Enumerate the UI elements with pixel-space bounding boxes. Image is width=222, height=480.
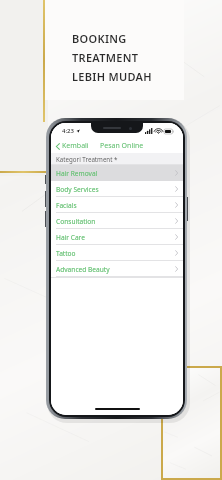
staticText: Pesan Online xyxy=(100,141,144,151)
button[interactable]: Advanced Beauty xyxy=(51,261,183,277)
staticText: Tattoo xyxy=(56,249,76,258)
staticText: BOOKING xyxy=(72,31,127,46)
staticText: Kategori Treatment * xyxy=(56,155,118,163)
button[interactable]: Pesan Online xyxy=(97,139,147,153)
staticText: Kembali xyxy=(62,141,89,151)
staticText: Advanced Beauty xyxy=(56,265,110,274)
button[interactable]: Hair Care xyxy=(51,229,183,245)
staticText: TREATMENT xyxy=(72,50,139,65)
button[interactable]: Tattoo xyxy=(51,245,183,261)
button[interactable]: Facials xyxy=(51,197,183,213)
button[interactable]: Consultation xyxy=(51,213,183,229)
button[interactable]: Body Services xyxy=(51,181,183,197)
staticText: Hair Care xyxy=(56,233,85,242)
staticText: LEBIH MUDAH xyxy=(72,69,152,84)
staticText: Consultation xyxy=(56,217,96,226)
staticText: Body Services xyxy=(56,185,99,194)
staticText: 4:23 xyxy=(62,127,74,135)
staticText: Facials xyxy=(56,201,77,210)
button[interactable]: Hair Removal xyxy=(51,165,183,181)
staticText: Hair Removal xyxy=(56,169,98,178)
button[interactable]: Kembali xyxy=(51,139,93,153)
